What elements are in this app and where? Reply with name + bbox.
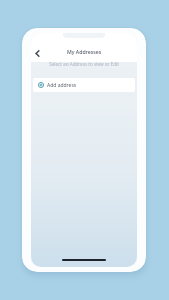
staticText: Select an Address to view or Edit: [31, 61, 137, 67]
staticText: Add address: [47, 82, 77, 89]
staticText: My Addresses: [67, 48, 102, 55]
button[interactable]: Add address: [33, 78, 135, 92]
button[interactable]: Back: [31, 47, 43, 59]
